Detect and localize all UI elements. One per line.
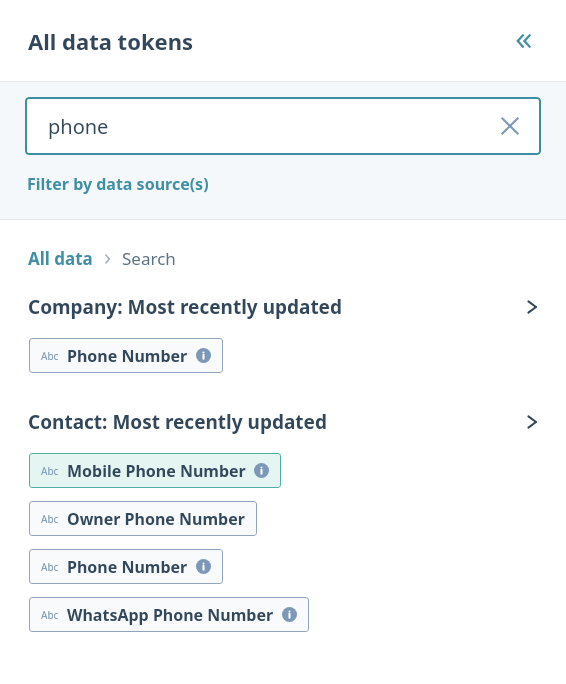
button[interactable]: Abc <box>29 549 223 584</box>
staticText: Abc <box>41 608 59 622</box>
button[interactable]: All data <box>28 247 93 270</box>
staticText: Mobile Phone Number <box>67 460 246 482</box>
button[interactable]: Abc <box>29 338 223 373</box>
staticText: Phone Number <box>67 556 188 578</box>
staticText: Abc <box>41 349 59 363</box>
button[interactable]: Filter by data source(s) <box>27 173 209 195</box>
staticText: Phone Number <box>67 345 188 367</box>
button[interactable]: Collapse panel <box>506 23 542 59</box>
staticText: WhatsApp Phone Number <box>67 604 274 626</box>
staticText: Abc <box>41 512 59 526</box>
staticText: Company: Most recently updated <box>28 294 522 320</box>
button[interactable]: Abc <box>29 597 309 632</box>
staticText: Owner Phone Number <box>67 508 245 530</box>
button[interactable]: Abc <box>29 453 281 488</box>
button[interactable]: Abc <box>29 501 257 536</box>
staticText: Abc <box>41 464 59 478</box>
button[interactable]: phone <box>25 97 541 155</box>
button[interactable]: Contact: Most recently updated <box>0 409 566 435</box>
staticText: phone <box>48 113 493 140</box>
staticText: Contact: Most recently updated <box>28 409 522 435</box>
staticText: Search <box>122 247 176 270</box>
staticText: Abc <box>41 560 59 574</box>
button[interactable]: Company: Most recently updated <box>0 294 566 320</box>
button[interactable]: Clear search <box>493 109 527 143</box>
staticText: All data tokens <box>28 26 194 56</box>
